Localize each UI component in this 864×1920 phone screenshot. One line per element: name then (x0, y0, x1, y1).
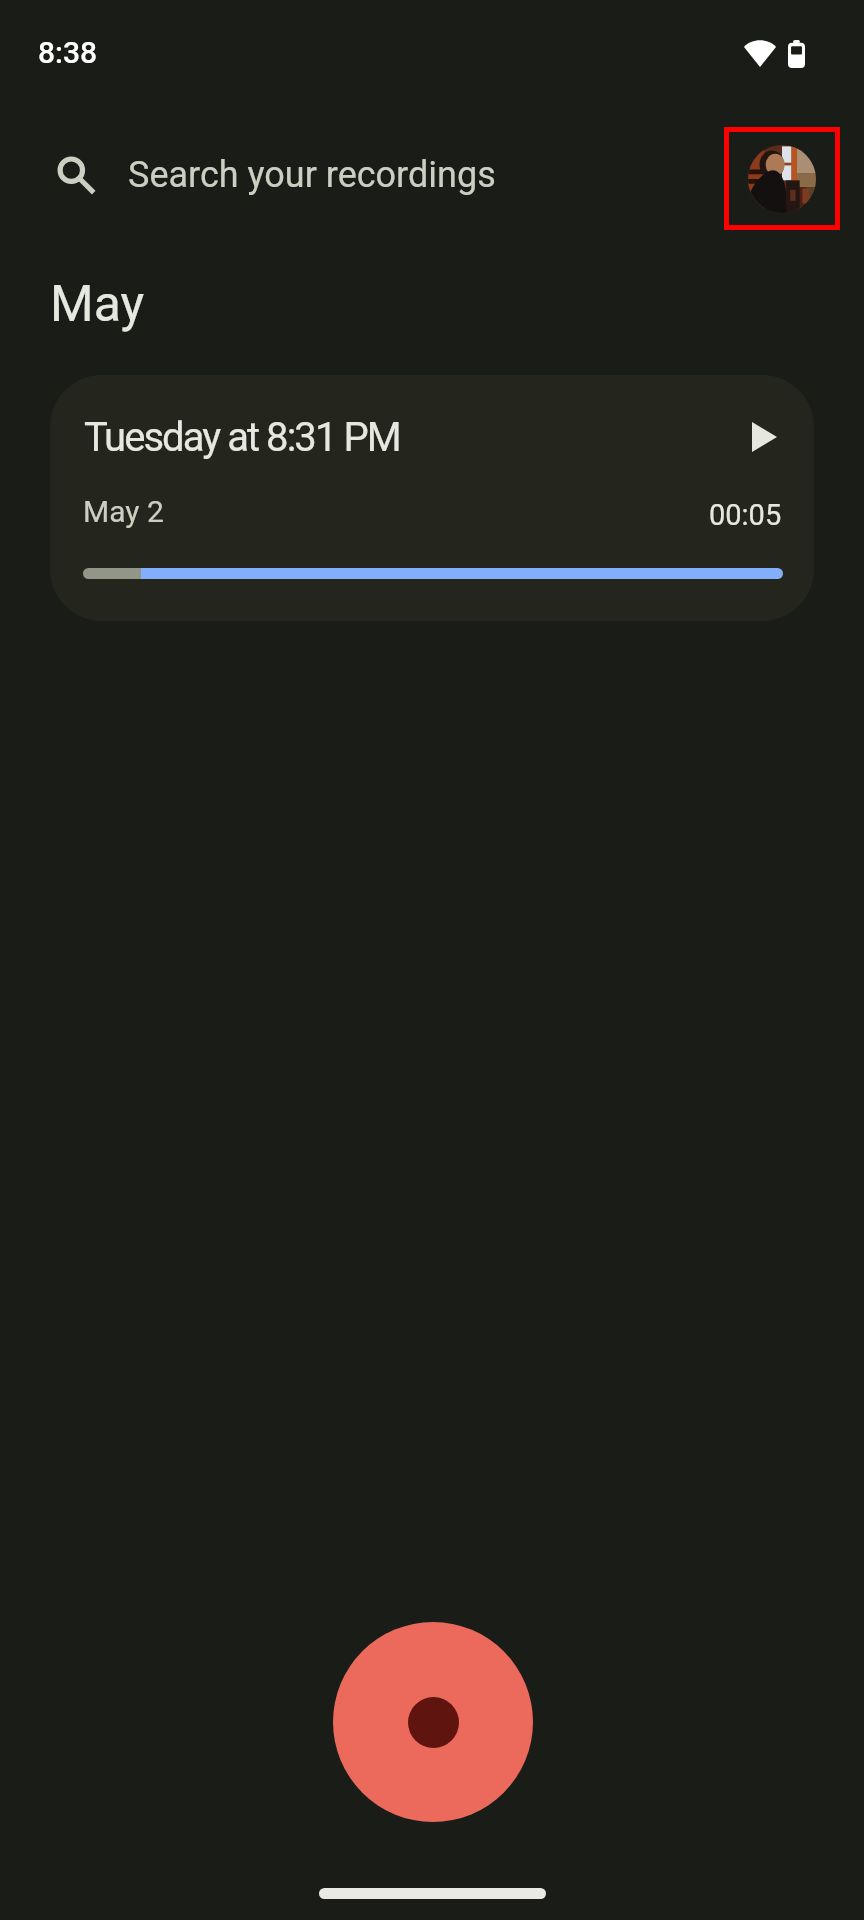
staticText: 00:05 (709, 498, 782, 532)
staticText: Tuesday at 8:31 PM (84, 414, 400, 461)
staticText: Search your recordings (128, 154, 496, 196)
button[interactable]: Search (0, 142, 864, 208)
staticText: May (50, 275, 145, 334)
staticText: 8:38 (38, 35, 98, 70)
button[interactable]: Play recording (728, 401, 800, 473)
button[interactable]: Account (748, 145, 816, 213)
button[interactable]: Start recording (333, 1622, 533, 1822)
other: Search (54, 155, 94, 195)
staticText: May 2 (83, 494, 164, 529)
button[interactable]: Tuesday at 8:31 PM (50, 375, 814, 621)
